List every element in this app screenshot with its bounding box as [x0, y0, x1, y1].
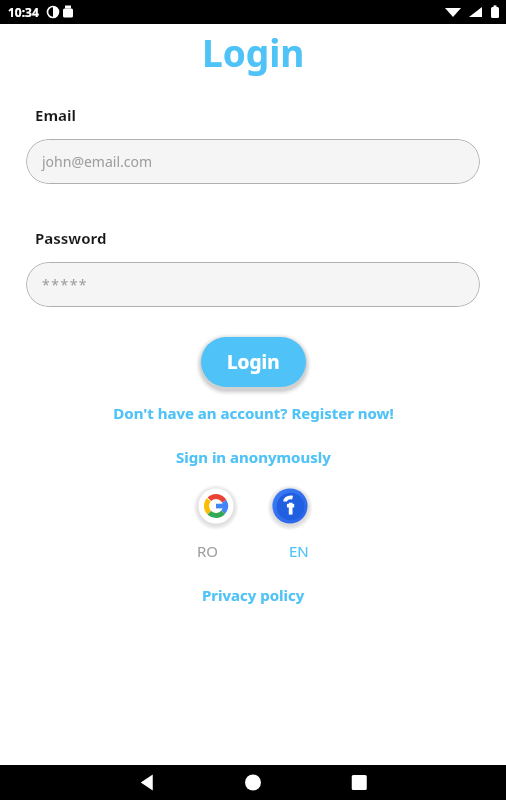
staticText: 10:34 — [8, 4, 39, 20]
button[interactable]: Sign in anonymously — [168, 444, 339, 470]
button[interactable]: ***** — [26, 262, 480, 307]
staticText: Don't have an account? Register now! — [113, 403, 394, 423]
staticText: RO — [197, 541, 219, 561]
staticText: Login — [202, 27, 305, 77]
button[interactable]: Privacy policy — [194, 582, 313, 608]
staticText: Password — [35, 228, 107, 248]
staticText: Login — [227, 349, 280, 375]
button[interactable]: Don't have an account? Register now! — [105, 400, 402, 426]
button[interactable]: Sign in with Facebook — [268, 484, 312, 528]
button[interactable]: john@email.com — [26, 139, 480, 184]
button[interactable]: RO — [185, 536, 231, 566]
staticText: Email — [35, 105, 76, 125]
staticText: Sign in anonymously — [176, 447, 331, 467]
staticText: john@email.com — [42, 152, 153, 171]
button[interactable]: Sign in with Google — [194, 484, 238, 528]
staticText: ***** — [42, 275, 89, 294]
button[interactable]: EN — [277, 536, 321, 566]
button[interactable]: Login — [201, 337, 306, 387]
staticText: EN — [289, 541, 309, 561]
staticText: Privacy policy — [202, 585, 305, 605]
